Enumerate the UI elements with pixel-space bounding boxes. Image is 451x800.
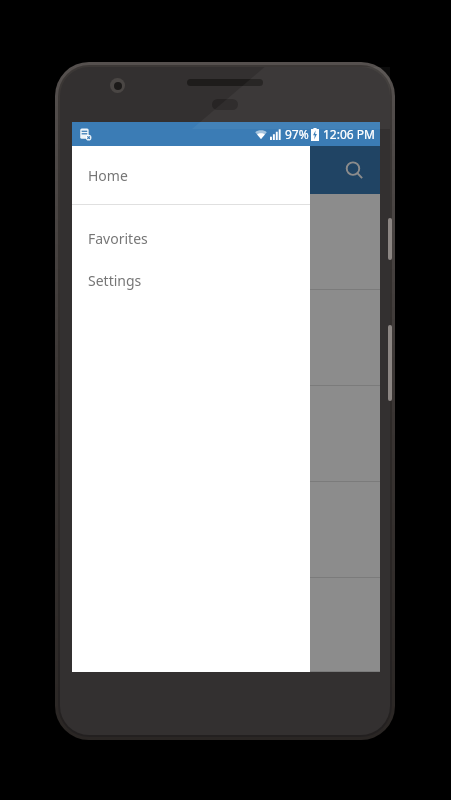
staticText: Favorites [88,229,148,248]
button[interactable]: 12. März 2018 [72,290,380,386]
staticText: Settings [88,271,142,290]
staticText: 12:06 PM [323,126,375,142]
other: Power [388,218,392,260]
button[interactable]: 21. Februar 2018 [72,386,380,482]
other: Volume [388,325,392,401]
button[interactable]: Settings [72,259,310,301]
staticText: Wissenschaft und [88,232,213,252]
button[interactable]: Search [334,150,374,190]
button[interactable]: 12. Januar 2018 [72,578,380,672]
button[interactable]: Favorites [72,217,310,259]
staticText: Home [88,166,128,185]
button[interactable]: 30. Januar 2018 [72,482,380,578]
button[interactable]: 30. März 2018 [72,194,380,290]
staticText: 97% [285,126,309,142]
button[interactable]: Home [72,146,310,204]
